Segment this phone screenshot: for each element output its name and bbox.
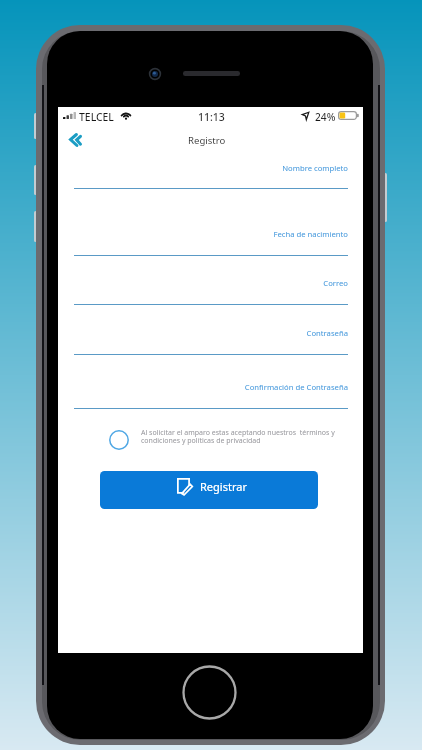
button[interactable]: Contraseña xyxy=(58,328,363,355)
staticText: Contraseña xyxy=(58,328,348,338)
staticText: Registrar xyxy=(200,479,247,494)
button[interactable]: Confirmación de Contraseña xyxy=(58,382,363,409)
staticText: Correo xyxy=(58,278,348,288)
staticText: Registro xyxy=(188,134,226,147)
staticText: Nombre completo xyxy=(58,163,348,173)
staticText: Confirmación de Contraseña xyxy=(58,382,348,392)
button[interactable]: Nombre completo xyxy=(58,163,363,190)
button[interactable]: Registrar xyxy=(100,471,318,509)
button[interactable]: Back xyxy=(61,126,89,154)
button[interactable]: Correo xyxy=(58,278,363,305)
staticText: Fecha de nacimiento xyxy=(58,229,348,239)
staticText: 11:13 xyxy=(198,110,225,124)
staticText: 24% xyxy=(315,110,336,124)
staticText: TELCEL xyxy=(79,110,114,124)
staticText: Al solicitar el amparo estas aceptando n… xyxy=(141,428,335,445)
button[interactable]: Accept terms and conditions xyxy=(105,426,133,454)
button[interactable]: Fecha de nacimiento xyxy=(58,229,363,256)
